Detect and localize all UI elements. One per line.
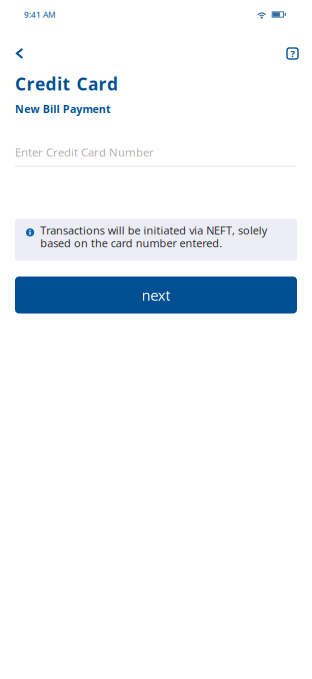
staticText: 9:41 AM — [24, 9, 56, 20]
staticText: Transactions will be initiated via NEFT,… — [40, 223, 267, 250]
button[interactable]: Back — [0, 29, 46, 68]
staticText: Enter Credit Card Number — [15, 144, 154, 160]
staticText: next — [141, 285, 170, 305]
staticText: ? — [290, 47, 294, 60]
staticText: New Bill Payment — [15, 102, 111, 116]
button[interactable]: next — [15, 276, 297, 313]
staticText: Credit Card — [15, 72, 118, 96]
button[interactable]: Help — [268, 29, 312, 68]
